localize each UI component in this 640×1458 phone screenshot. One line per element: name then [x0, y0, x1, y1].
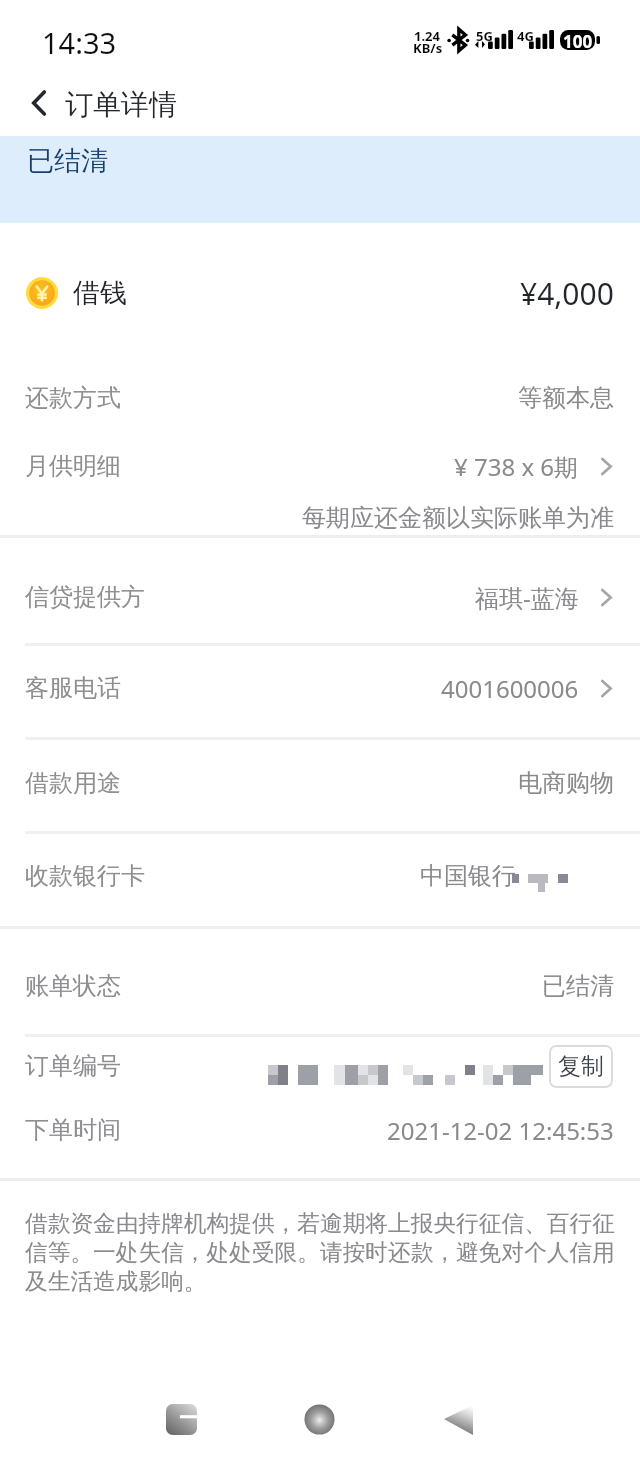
- button[interactable]: 还款方式: [0, 364, 640, 432]
- staticText: 月供明细: [25, 451, 121, 481]
- staticText: 复制: [558, 1052, 604, 1081]
- staticText: 5G: [476, 27, 493, 45]
- staticText: 4001600006: [441, 672, 579, 705]
- staticText: 订单编号: [25, 1051, 121, 1081]
- staticText: 收款银行卡: [25, 861, 145, 891]
- button[interactable]: Back: [13, 78, 65, 128]
- staticText: 还款方式: [25, 383, 121, 413]
- button[interactable]: 收款银行卡: [0, 842, 640, 910]
- button[interactable]: 月供明细: [0, 432, 640, 500]
- staticText: 信等。一处失信，处处受限。请按时还款，避免对个人信用: [25, 1238, 615, 1267]
- staticText: 信贷提供方: [25, 582, 145, 612]
- button[interactable]: 账单状态: [0, 952, 640, 1020]
- button[interactable]: Recent apps: [150, 1388, 213, 1451]
- button[interactable]: Home: [288, 1388, 351, 1451]
- staticText: KB/s: [413, 39, 443, 57]
- staticText: 借钱: [73, 276, 127, 310]
- staticText: 福琪-蓝海: [475, 581, 579, 614]
- staticText: 等额本息: [518, 383, 614, 413]
- staticText: 客服电话: [25, 673, 121, 703]
- staticText: ¥ 738 x 6期: [454, 450, 579, 483]
- staticText: 下单时间: [25, 1115, 121, 1145]
- staticText: 已结清: [542, 971, 614, 1001]
- button[interactable]: 借款用途: [0, 749, 640, 817]
- staticText: 4G: [517, 27, 534, 45]
- staticText: 中国银行: [420, 861, 516, 891]
- button[interactable]: 订单编号: [0, 1032, 640, 1100]
- staticText: ¥4,000: [520, 273, 614, 314]
- staticText: 每期应还金额以实际账单为准: [302, 503, 614, 533]
- button[interactable]: 下单时间: [0, 1096, 640, 1164]
- staticText: 100: [563, 30, 593, 50]
- button[interactable]: Back: [427, 1388, 490, 1451]
- staticText: 借款资金由持牌机构提供，若逾期将上报央行征信、百行征: [25, 1209, 615, 1238]
- button[interactable]: 客服电话: [0, 654, 640, 722]
- staticText: 及生活造成影响。: [25, 1267, 207, 1296]
- button[interactable]: 复制: [549, 1045, 613, 1088]
- staticText: 2021-12-02 12:45:53: [387, 1114, 614, 1147]
- staticText: 电商购物: [518, 768, 614, 798]
- staticText: 1.24: [414, 27, 440, 45]
- button[interactable]: 信贷提供方: [0, 563, 640, 631]
- staticText: 14:33: [42, 23, 117, 62]
- staticText: 订单详情: [65, 87, 177, 122]
- staticText: 借款用途: [25, 768, 121, 798]
- staticText: 账单状态: [25, 971, 121, 1001]
- staticText: 已结清: [27, 144, 108, 178]
